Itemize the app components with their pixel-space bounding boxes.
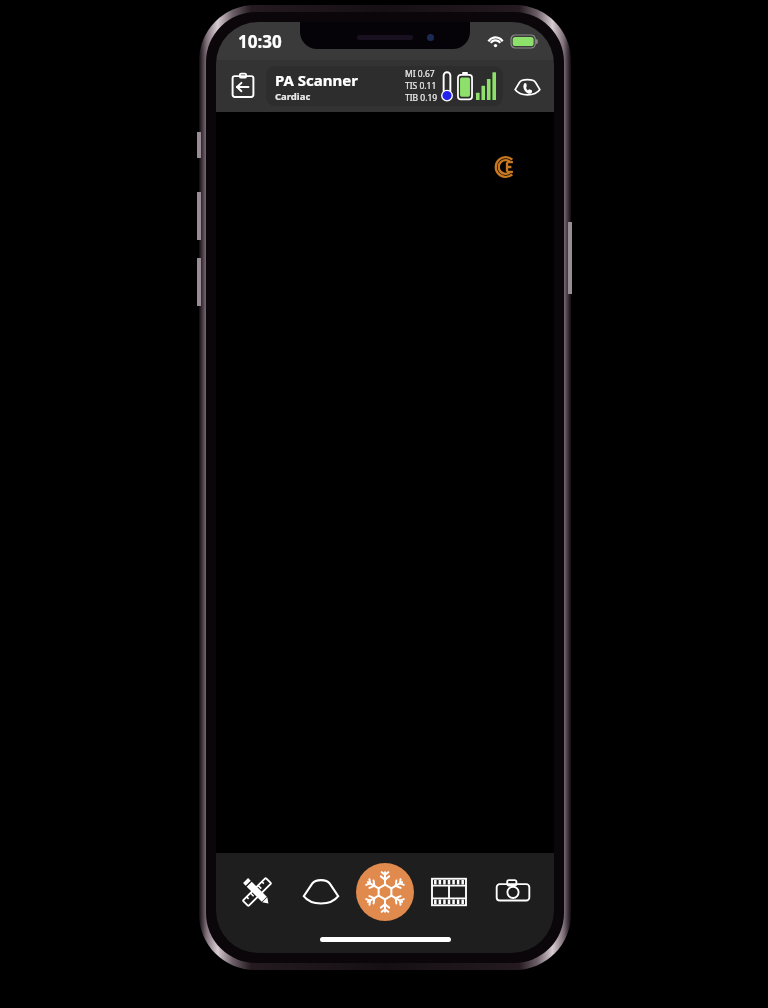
button[interactable]: Cine loop: [421, 864, 477, 920]
button[interactable]: Measure: [229, 864, 285, 920]
staticText: MI 0.67: [405, 68, 435, 80]
button[interactable]: Probe call: [507, 66, 547, 106]
staticText: PA Scanner: [275, 70, 358, 90]
button[interactable]: Capture: [485, 864, 541, 920]
button[interactable]: PA Scanner: [266, 66, 503, 106]
staticText: 10:30: [238, 30, 282, 53]
staticText: Cardiac: [275, 90, 311, 103]
button[interactable]: B mode: [293, 864, 349, 920]
button[interactable]: Back to worksheet: [223, 66, 263, 106]
staticText: TIB 0.19: [405, 92, 438, 104]
button[interactable]: Freeze: [356, 863, 414, 921]
staticText: TIS 0.11: [405, 80, 437, 92]
